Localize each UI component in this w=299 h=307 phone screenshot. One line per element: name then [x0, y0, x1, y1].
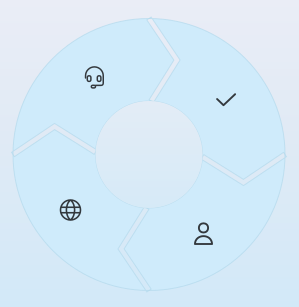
- button[interactable]: Support: [71, 54, 117, 100]
- button[interactable]: Tasks: [203, 77, 249, 123]
- button[interactable]: Account: [180, 210, 226, 256]
- button[interactable]: Language: [47, 187, 93, 233]
